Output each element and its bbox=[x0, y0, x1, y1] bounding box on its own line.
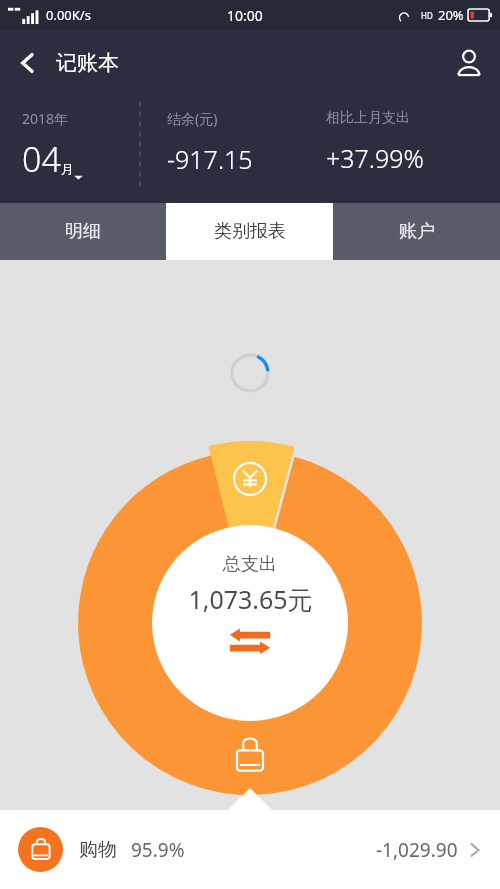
staticText: 总支出 bbox=[223, 553, 277, 576]
button[interactable]: 明细 bbox=[0, 203, 166, 260]
button[interactable]: 类别报表 bbox=[166, 203, 333, 260]
button[interactable]: Account bbox=[438, 32, 500, 94]
button[interactable]: 购物 bbox=[0, 810, 500, 889]
staticText: 95.9% bbox=[131, 837, 185, 863]
staticText: -1,029.90 bbox=[376, 837, 458, 863]
staticText: 类别报表 bbox=[214, 220, 286, 243]
staticText: 购物 bbox=[79, 838, 117, 862]
staticText: 月 bbox=[61, 161, 74, 177]
staticText: 结余(元) bbox=[167, 109, 218, 128]
staticText: 记账本 bbox=[56, 50, 119, 76]
staticText: HD bbox=[421, 10, 433, 21]
staticText: -917.15 bbox=[167, 142, 253, 176]
staticText: 账户 bbox=[399, 220, 435, 243]
staticText: 10:00 bbox=[227, 6, 263, 25]
staticText: 明细 bbox=[65, 220, 101, 243]
staticText: +37.99% bbox=[326, 141, 424, 175]
staticText: 2018年 bbox=[22, 109, 69, 128]
staticText: 相比上月支出 bbox=[326, 109, 410, 127]
button[interactable]: 账户 bbox=[333, 203, 500, 260]
staticText: 0.00K/s bbox=[46, 6, 91, 24]
staticText: 1,073.65元 bbox=[188, 582, 313, 616]
staticText: 20% bbox=[438, 6, 464, 24]
staticText: 04 bbox=[22, 136, 61, 182]
button[interactable]: Back bbox=[0, 35, 56, 91]
